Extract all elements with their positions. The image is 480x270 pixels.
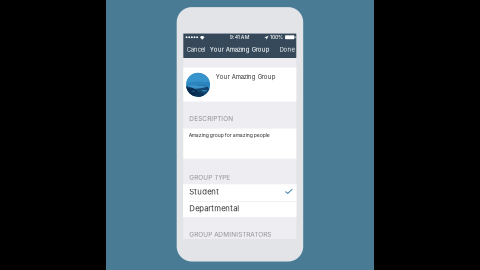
staticText: Done <box>279 46 294 53</box>
staticText: Student <box>189 187 219 196</box>
staticText: 100% <box>270 34 283 40</box>
button[interactable]: Cancel <box>187 41 209 58</box>
button[interactable]: Student <box>183 184 296 201</box>
button[interactable]: Departmental <box>183 202 296 217</box>
staticText: Departmental <box>189 204 239 213</box>
staticText: GROUP TYPE <box>189 173 230 181</box>
staticText: DESCRIPTION <box>189 115 233 123</box>
staticText: Amazing group for amazing people <box>189 132 270 138</box>
staticText: Your Amazing Group <box>210 46 270 53</box>
button[interactable]: Your Amazing Group <box>183 68 296 101</box>
staticText: Your Amazing Group <box>216 73 276 80</box>
staticText: 9:41 AM <box>230 34 250 40</box>
staticText: Cancel <box>187 46 205 53</box>
button[interactable]: Done <box>276 41 294 58</box>
staticText: GROUP ADMINISTRATORS <box>189 230 271 238</box>
